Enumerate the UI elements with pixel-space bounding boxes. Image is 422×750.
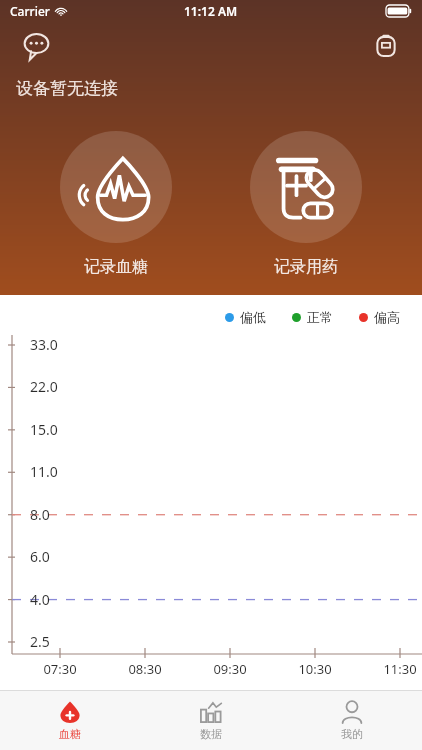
staticText: 11:30 xyxy=(372,660,422,678)
staticText: 血糖 xyxy=(59,727,81,741)
button[interactable]: 血糖 xyxy=(0,691,140,750)
button[interactable]: Device xyxy=(366,26,406,66)
staticText: 8.0 xyxy=(30,505,50,524)
button[interactable]: 记录血糖 xyxy=(41,131,191,277)
staticText: 08:30 xyxy=(117,660,173,678)
staticText: Carrier xyxy=(10,3,50,19)
staticText: 数据 xyxy=(200,727,222,741)
staticText: 记录血糖 xyxy=(84,257,148,277)
staticText: 15.0 xyxy=(30,420,58,439)
staticText: 22.0 xyxy=(30,377,58,396)
staticText: 我的 xyxy=(341,727,363,741)
staticText: 11:12 AM xyxy=(184,3,238,19)
staticText: 07:30 xyxy=(32,660,88,678)
staticText: 4.0 xyxy=(30,590,50,609)
staticText: 正常 xyxy=(307,309,333,325)
staticText: 11.0 xyxy=(30,462,58,481)
staticText: 偏低 xyxy=(240,309,266,325)
staticText: 6.0 xyxy=(30,547,50,566)
button[interactable]: 我的 xyxy=(281,691,422,750)
staticText: 2.5 xyxy=(30,632,50,651)
button[interactable]: 记录用药 xyxy=(231,131,381,277)
staticText: 记录用药 xyxy=(274,257,338,277)
staticText: 09:30 xyxy=(202,660,258,678)
staticText: 10:30 xyxy=(287,660,343,678)
button[interactable]: 数据 xyxy=(140,691,281,750)
staticText: 设备暂无连接 xyxy=(16,78,118,99)
staticText: 33.0 xyxy=(30,335,58,354)
staticText: 偏高 xyxy=(374,309,400,325)
button[interactable]: Messages xyxy=(16,26,56,66)
